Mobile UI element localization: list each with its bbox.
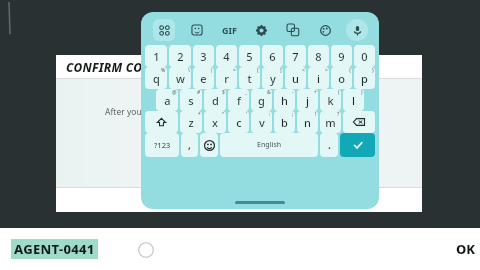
button[interactable]: k: [320, 89, 341, 111]
button[interactable]: 6: [262, 45, 283, 67]
button[interactable]: Settings: [250, 19, 272, 41]
button[interactable]: z: [180, 111, 202, 133]
button[interactable]: s: [180, 89, 202, 111]
button[interactable]: o: [331, 67, 352, 89]
button[interactable]: q: [145, 67, 167, 89]
button[interactable]: r: [216, 67, 237, 89]
staticText: p: [361, 71, 368, 86]
staticText: <: [302, 67, 305, 74]
button[interactable]: h: [274, 89, 295, 111]
staticText: d: [212, 93, 219, 108]
button[interactable]: 4: [216, 45, 237, 67]
button[interactable]: AGENT-0441: [14, 240, 95, 258]
staticText: -: [292, 89, 294, 96]
staticText: (: [338, 89, 340, 96]
staticText: CONFIRM CODE: [66, 59, 158, 75]
button[interactable]: c: [228, 111, 249, 133]
staticText: 6: [269, 49, 276, 64]
button[interactable]: t: [239, 67, 260, 89]
button[interactable]: 1: [145, 45, 167, 67]
staticText: English: [257, 140, 282, 150]
button[interactable]: GIF: [218, 19, 240, 41]
staticText: 2: [177, 49, 184, 64]
staticText: 9: [338, 49, 345, 64]
button[interactable]: Theme: [314, 19, 336, 41]
button[interactable]: m: [320, 111, 341, 133]
staticText: n: [304, 115, 311, 130]
button[interactable]: Emoji: [200, 133, 218, 157]
staticText: #: [197, 89, 201, 96]
staticText: v: [259, 115, 265, 130]
button[interactable]: b: [274, 111, 295, 133]
button[interactable]: j: [297, 89, 318, 111]
staticText: |: [210, 67, 213, 74]
staticText: 1: [153, 49, 160, 64]
staticText: AGENT-0441: [14, 240, 95, 258]
staticText: z: [188, 115, 194, 130]
staticText: u: [292, 71, 299, 86]
staticText: t: [247, 71, 252, 86]
button[interactable]: g: [251, 89, 272, 111]
button[interactable]: Stickers: [186, 19, 208, 41]
button[interactable]: x: [204, 111, 226, 133]
button[interactable]: 8: [308, 45, 329, 67]
button[interactable]: Backspace: [343, 111, 375, 133]
staticText: f: [237, 93, 241, 108]
staticText: h: [281, 93, 288, 108]
staticText: k: [327, 93, 334, 108]
staticText: g: [258, 93, 265, 108]
button[interactable]: 7: [285, 45, 306, 67]
staticText: 8: [315, 49, 322, 64]
button[interactable]: Symbols: [145, 133, 179, 157]
button[interactable]: 9: [331, 45, 352, 67]
staticText: OK: [456, 240, 476, 258]
staticText: o: [338, 71, 345, 86]
staticText: \: [188, 67, 190, 74]
button[interactable]: 2: [169, 45, 191, 67]
button[interactable]: e: [193, 67, 214, 89]
button[interactable]: v: [251, 111, 272, 133]
staticText: s: [188, 93, 194, 108]
button[interactable]: Apps: [153, 19, 175, 41]
staticText: 0: [361, 49, 368, 64]
button[interactable]: 5: [239, 45, 260, 67]
staticText: r: [224, 71, 229, 86]
button[interactable]: Shift: [145, 111, 178, 133]
button[interactable]: u: [285, 67, 306, 89]
staticText: 3: [200, 49, 207, 64]
button[interactable]: l: [343, 89, 364, 111]
staticText: {: [349, 67, 351, 74]
button[interactable]: Enter: [340, 133, 375, 157]
staticText: ?123: [154, 140, 171, 150]
button[interactable]: p: [354, 67, 375, 89]
button[interactable]: w: [169, 67, 191, 89]
staticText: _: [245, 89, 248, 96]
staticText: $: [222, 89, 225, 96]
staticText: ): [361, 89, 363, 96]
staticText: w: [176, 71, 185, 86]
button[interactable]: 0: [354, 45, 375, 67]
button[interactable]: Voice input: [346, 19, 368, 41]
staticText: >: [325, 67, 328, 74]
button[interactable]: Space: [220, 133, 318, 157]
button[interactable]: Comma: [181, 133, 198, 157]
button[interactable]: Period: [320, 133, 338, 157]
button[interactable]: Translate: [282, 19, 304, 41]
staticText: ?: [337, 111, 340, 118]
staticText: +: [314, 89, 317, 96]
button[interactable]: a: [156, 89, 178, 111]
staticText: !: [315, 111, 317, 118]
staticText: j: [306, 93, 309, 108]
button[interactable]: y: [262, 67, 283, 89]
button[interactable]: n: [297, 111, 318, 133]
staticText: b: [281, 115, 288, 130]
staticText: x: [212, 115, 218, 130]
staticText: q: [153, 71, 160, 86]
staticText: e: [200, 71, 207, 86]
button[interactable]: 3: [193, 45, 214, 67]
button[interactable]: i: [308, 67, 329, 89]
button[interactable]: d: [204, 89, 226, 111]
staticText: =: [233, 67, 236, 74]
button[interactable]: f: [228, 89, 249, 111]
staticText: @: [172, 89, 177, 96]
